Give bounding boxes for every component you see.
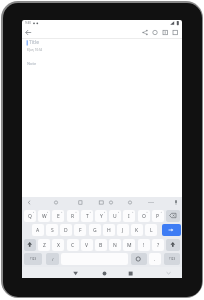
button[interactable] — [24, 28, 33, 37]
button[interactable]: ! — [138, 239, 150, 251]
button[interactable]: K — [131, 224, 143, 236]
staticText: F — [79, 227, 82, 234]
staticText: I — [128, 213, 130, 220]
staticText: 8 Jun, 10:54 — [27, 48, 43, 52]
button[interactable]: Y — [95, 210, 107, 222]
staticText: ?123 — [30, 257, 37, 261]
staticText: ! — [143, 242, 145, 249]
button[interactable] — [71, 268, 80, 277]
button[interactable] — [76, 198, 85, 207]
button[interactable]: Q — [24, 210, 36, 222]
staticText: Title — [29, 39, 39, 46]
staticText: C — [71, 242, 75, 249]
staticText: Note — [27, 61, 37, 66]
button[interactable] — [131, 253, 147, 265]
button[interactable]: U — [109, 210, 121, 222]
staticText: L — [150, 227, 153, 234]
button[interactable] — [171, 28, 180, 37]
staticText: A — [36, 227, 40, 234]
button[interactable] — [162, 224, 181, 236]
button[interactable]: H — [103, 224, 115, 236]
button[interactable]: X — [52, 239, 64, 251]
button[interactable]: G — [89, 224, 101, 236]
staticText: V — [85, 242, 89, 249]
button[interactable] — [25, 198, 34, 207]
staticText: J — [122, 227, 124, 234]
button[interactable]: ?123 — [24, 253, 42, 265]
staticText: N — [113, 242, 117, 249]
button[interactable] — [126, 198, 135, 207]
staticText: E — [57, 213, 60, 220]
button[interactable]: B — [95, 239, 107, 251]
button[interactable]: S — [46, 224, 58, 236]
button[interactable]: F — [74, 224, 86, 236]
staticText: ?123 — [169, 257, 176, 261]
button[interactable]: E — [52, 210, 64, 222]
button[interactable]: W — [38, 210, 50, 222]
button[interactable] — [161, 28, 170, 37]
staticText: K — [135, 227, 139, 234]
button[interactable] — [172, 198, 181, 207]
staticText: / — [52, 257, 54, 262]
button[interactable] — [107, 198, 116, 207]
staticText: H — [107, 227, 111, 234]
button[interactable] — [147, 198, 156, 207]
button[interactable]: M — [123, 239, 135, 251]
button[interactable]: N — [109, 239, 121, 251]
staticText: . — [154, 256, 156, 262]
staticText: M — [127, 242, 132, 249]
button[interactable]: V — [81, 239, 93, 251]
button[interactable]: T — [81, 210, 93, 222]
button[interactable]: L — [145, 224, 157, 236]
button[interactable]: O — [138, 210, 150, 222]
staticText: T — [86, 213, 89, 220]
button[interactable] — [166, 239, 180, 251]
button[interactable]: . — [149, 253, 161, 265]
staticText: R — [71, 213, 75, 220]
staticText: G — [93, 227, 97, 234]
button[interactable]: C — [67, 239, 79, 251]
button[interactable]: A — [32, 224, 44, 236]
staticText: U — [113, 213, 117, 220]
staticText: X — [57, 242, 60, 249]
staticText: Q — [28, 213, 32, 220]
button[interactable]: J — [117, 224, 129, 236]
button[interactable] — [100, 268, 109, 277]
button[interactable]: I — [123, 210, 135, 222]
button[interactable] — [151, 28, 160, 37]
staticText: W — [42, 213, 47, 220]
staticText: D — [64, 227, 68, 234]
staticText: Z — [43, 242, 46, 249]
button[interactable] — [126, 268, 135, 277]
staticText: P — [156, 213, 160, 220]
button[interactable] — [52, 198, 61, 207]
button[interactable] — [141, 28, 150, 37]
button[interactable]: R — [67, 210, 79, 222]
button[interactable] — [97, 198, 106, 207]
button[interactable]: P — [152, 210, 164, 222]
staticText: 9:30 — [25, 21, 31, 25]
button[interactable]: ? — [152, 239, 164, 251]
button[interactable]: / — [46, 253, 59, 265]
staticText: S — [51, 227, 54, 234]
staticText: Y — [100, 213, 103, 220]
staticText: B — [99, 242, 103, 249]
button[interactable]: D — [60, 224, 72, 236]
button[interactable] — [24, 239, 36, 251]
button[interactable] — [166, 210, 180, 222]
staticText: O — [142, 213, 146, 220]
button[interactable]: Z — [38, 239, 50, 251]
staticText: ? — [157, 242, 160, 249]
button[interactable]: ?123 — [164, 253, 180, 265]
